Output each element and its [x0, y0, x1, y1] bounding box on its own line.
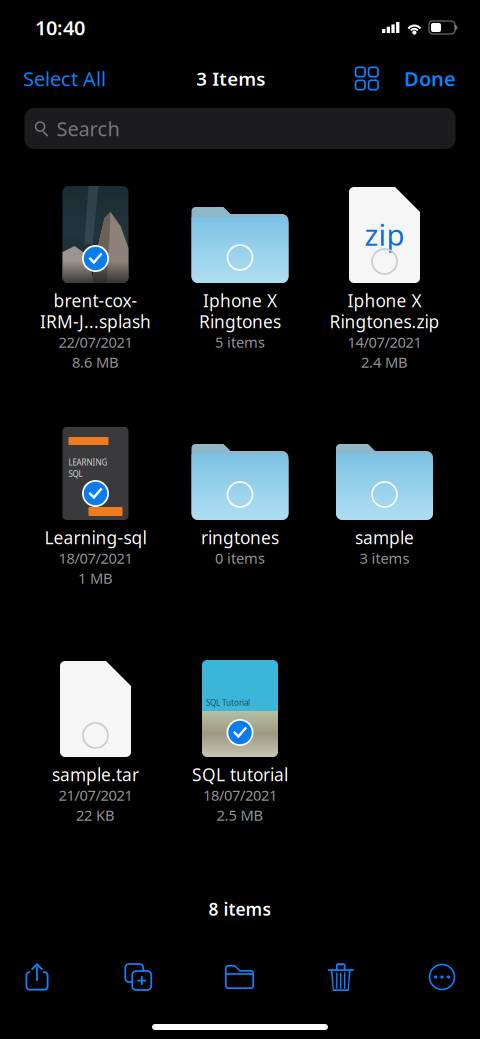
staticText: Iphone X [347, 289, 421, 312]
button[interactable]: sample.tar [23, 660, 168, 835]
staticText: 18/07/2021 [203, 785, 277, 805]
button[interactable]: Search [24, 108, 455, 149]
staticText: 3 Items [196, 66, 265, 91]
staticText: Learning-sql [44, 526, 146, 549]
button[interactable]: More [420, 960, 464, 994]
staticText: Done [404, 65, 456, 92]
staticText: brent-cox- [53, 289, 137, 312]
button[interactable]: Duplicate [116, 960, 160, 994]
button[interactable]: zip [312, 186, 457, 423]
button[interactable]: Share [15, 960, 59, 994]
button[interactable]: Done [404, 59, 456, 98]
staticText: 22 KB [76, 805, 115, 825]
staticText: 8 items [208, 897, 271, 920]
staticText: 5 items [215, 332, 265, 352]
staticText: ringtones [201, 526, 279, 549]
button[interactable]: Grid view [356, 62, 378, 95]
button[interactable]: Move to folder [217, 960, 261, 994]
button[interactable]: sample [312, 423, 457, 660]
staticText: sample.tar [52, 763, 139, 786]
button[interactable]: Iphone X [168, 186, 312, 423]
staticText: LEARNING [68, 457, 107, 468]
button[interactable]: LEARNING [23, 423, 168, 660]
staticText: Ringtones.zip [329, 310, 439, 333]
staticText: Select All [23, 65, 106, 92]
staticText: 1 MB [78, 568, 113, 588]
staticText: SQL [68, 469, 82, 479]
staticText: 2.5 MB [216, 805, 263, 825]
button[interactable]: ringtones [168, 423, 312, 660]
staticText: 0 items [215, 548, 265, 568]
staticText: 22/07/2021 [58, 332, 132, 352]
button[interactable]: SQL Tutorial [168, 660, 312, 835]
staticText: Search [56, 115, 119, 142]
staticText: SQL tutorial [192, 763, 288, 786]
button[interactable]: Delete [319, 960, 363, 994]
staticText: 2.4 MB [361, 352, 408, 372]
staticText: Iphone X [203, 289, 277, 312]
staticText: SQL Tutorial [206, 697, 250, 708]
staticText: 18/07/2021 [58, 548, 132, 568]
staticText: 10:40 [35, 14, 85, 41]
staticText: sample [355, 526, 414, 549]
staticText: IRM-J...splash [40, 310, 151, 333]
staticText: 21/07/2021 [58, 785, 132, 805]
staticText: Ringtones [199, 310, 281, 333]
button[interactable]: Select All [23, 59, 106, 98]
button[interactable]: brent-cox- [23, 186, 168, 423]
staticText: 14/07/2021 [347, 332, 421, 352]
staticText: zip [364, 215, 404, 254]
staticText: 8.6 MB [72, 352, 119, 372]
staticText: 3 items [359, 548, 409, 568]
